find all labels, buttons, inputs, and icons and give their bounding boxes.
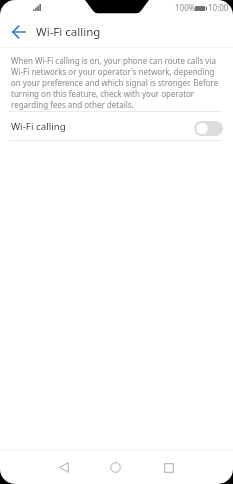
button[interactable]: Back [47,451,80,484]
staticText: Wi-Fi calling [36,24,101,40]
button[interactable]: Home [99,451,132,484]
staticText: Wi-Fi calling [11,120,66,133]
button[interactable]: Back [0,17,36,47]
staticText: 10:00 [208,2,229,13]
staticText: When Wi-Fi calling is on, your phone can… [11,55,222,110]
button[interactable]: Recents [152,451,185,484]
button[interactable]: Wi-Fi calling [0,112,233,140]
staticText: 100% [175,2,196,13]
